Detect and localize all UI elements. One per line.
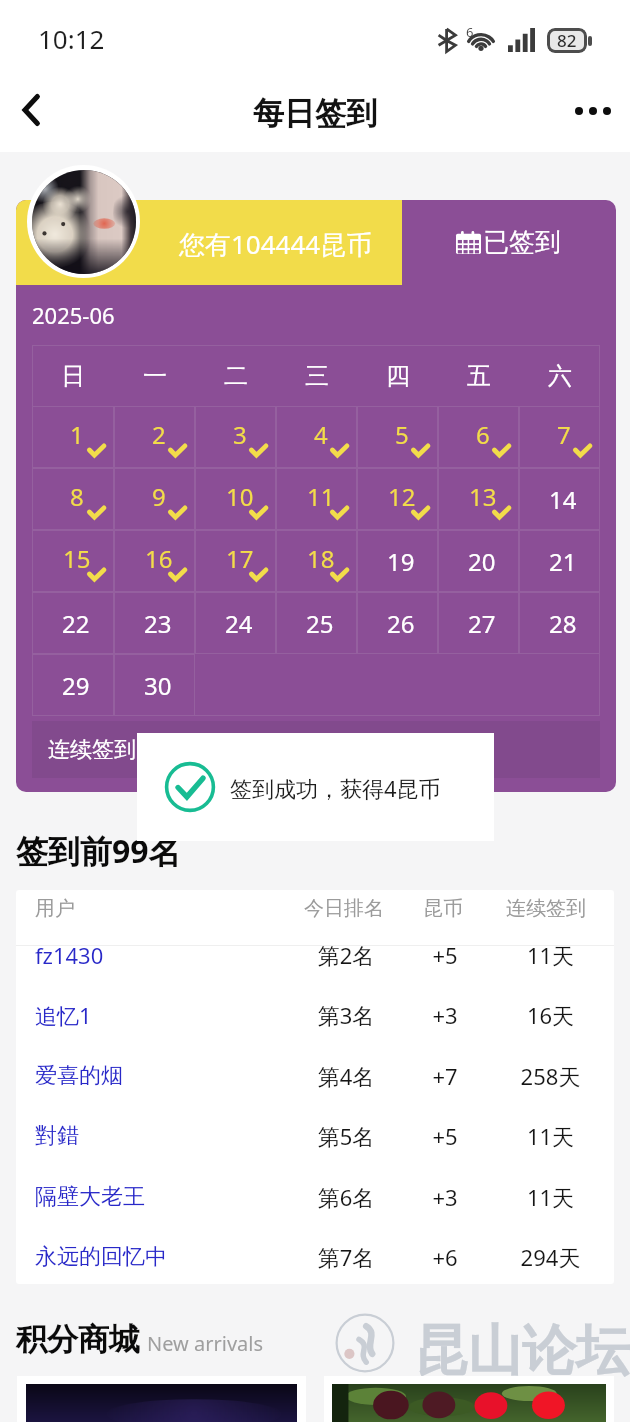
button[interactable]: 8 xyxy=(32,468,114,530)
staticText: 积分商城 xyxy=(16,1320,140,1359)
staticText: 11天 xyxy=(488,1121,613,1151)
button[interactable]: 10 xyxy=(195,468,276,530)
staticText: 2 xyxy=(152,418,166,451)
button[interactable]: 17 xyxy=(195,530,276,592)
button[interactable]: 21 xyxy=(519,530,600,592)
button[interactable]: 15 xyxy=(32,530,114,592)
staticText: 18 xyxy=(307,542,335,575)
button[interactable]: 12 xyxy=(357,468,438,530)
button[interactable]: 14 xyxy=(519,468,600,530)
staticText: 19 xyxy=(387,545,415,578)
staticText: 11天 xyxy=(488,1182,613,1212)
staticText: 27 xyxy=(468,607,496,640)
button[interactable]: 9 xyxy=(114,468,195,530)
button[interactable]: 13 xyxy=(438,468,519,530)
staticText: 日 xyxy=(61,361,85,391)
button[interactable]: 1 xyxy=(32,406,114,468)
staticText: 13 xyxy=(469,480,497,513)
button[interactable]: 2 xyxy=(114,406,195,468)
button[interactable]: 對錯 xyxy=(16,1106,614,1166)
staticText: 今日排名 xyxy=(304,896,384,921)
staticText: 23 xyxy=(144,607,172,640)
staticText: 用户 xyxy=(35,896,75,921)
staticText: 10:12 xyxy=(38,21,105,56)
staticText: 连续签到 xyxy=(506,896,586,921)
button[interactable]: 22 xyxy=(32,592,114,654)
staticText: 16 xyxy=(145,542,173,575)
button[interactable]: 20 xyxy=(438,530,519,592)
staticText: 爱喜的烟 xyxy=(35,1062,123,1090)
staticText: 20 xyxy=(468,545,496,578)
button[interactable]: 19 xyxy=(357,530,438,592)
button[interactable] xyxy=(17,1376,306,1422)
staticText: 已签到 xyxy=(483,226,561,259)
staticText: 6 xyxy=(466,23,474,41)
staticText: 15 xyxy=(63,542,91,575)
staticText: 二 xyxy=(224,361,248,391)
staticText: 第6名 xyxy=(286,1182,406,1212)
staticText: 第3名 xyxy=(286,1000,406,1030)
staticText: 82 xyxy=(557,29,577,52)
button[interactable]: 隔壁大老王 xyxy=(16,1167,614,1227)
button[interactable]: 5 xyxy=(357,406,438,468)
staticText: +5 xyxy=(400,940,490,970)
staticText: 對錯 xyxy=(35,1122,79,1150)
staticText: 258天 xyxy=(488,1061,613,1091)
staticText: fz1430 xyxy=(35,940,104,970)
staticText: 3 xyxy=(233,418,247,451)
button[interactable]: More options xyxy=(565,83,621,139)
button[interactable]: 已签到 xyxy=(456,226,561,259)
button[interactable]: 27 xyxy=(438,592,519,654)
staticText: 21 xyxy=(549,545,577,578)
button[interactable] xyxy=(324,1376,614,1422)
button[interactable]: 4 xyxy=(276,406,357,468)
button[interactable]: 3 xyxy=(195,406,276,468)
staticText: 隔壁大老王 xyxy=(35,1183,145,1211)
staticText: 10 xyxy=(226,480,254,513)
staticText: 8 xyxy=(70,480,84,513)
button[interactable]: 11 xyxy=(276,468,357,530)
button[interactable]: 16 xyxy=(114,530,195,592)
staticText: 第5名 xyxy=(286,1121,406,1151)
staticText: +7 xyxy=(400,1061,490,1091)
staticText: 昆币 xyxy=(423,896,463,921)
staticText: 连续签到 xyxy=(48,736,136,764)
button[interactable]: 23 xyxy=(114,592,195,654)
button[interactable]: 24 xyxy=(195,592,276,654)
staticText: 7 xyxy=(557,418,571,451)
staticText: 六 xyxy=(548,361,572,391)
button[interactable]: fz1430 xyxy=(16,925,614,985)
button[interactable]: 25 xyxy=(276,592,357,654)
staticText: 2025-06 xyxy=(32,300,115,330)
button[interactable]: 6 xyxy=(438,406,519,468)
button[interactable]: 26 xyxy=(357,592,438,654)
button[interactable]: 28 xyxy=(519,592,600,654)
staticText: 16天 xyxy=(488,1000,613,1030)
staticText: 第2名 xyxy=(286,940,406,970)
staticText: 第7名 xyxy=(286,1242,406,1272)
staticText: +6 xyxy=(400,1242,490,1272)
staticText: New arrivals xyxy=(147,1330,264,1357)
button[interactable]: 18 xyxy=(276,530,357,592)
button[interactable]: 30 xyxy=(114,654,195,716)
staticText: 昆山论坛 xyxy=(414,1317,630,1385)
button[interactable]: 爱喜的烟 xyxy=(16,1046,614,1106)
staticText: 签到前99名 xyxy=(16,829,181,873)
button[interactable]: 永远的回忆中 xyxy=(16,1227,614,1284)
button[interactable]: 29 xyxy=(32,654,114,716)
staticText: +3 xyxy=(400,1000,490,1030)
staticText: 24 xyxy=(225,607,253,640)
staticText: 30 xyxy=(144,669,172,702)
staticText: 第4名 xyxy=(286,1061,406,1091)
staticText: 6 xyxy=(476,418,490,451)
staticText: 签到成功，获得4昆币 xyxy=(230,773,441,803)
button[interactable]: 7 xyxy=(519,406,600,468)
staticText: 四 xyxy=(386,361,410,391)
staticText: 永远的回忆中 xyxy=(35,1243,167,1271)
button[interactable]: 追忆1 xyxy=(16,985,614,1045)
staticText: 您有104444昆币 xyxy=(179,226,373,262)
staticText: 4 xyxy=(314,418,328,451)
button[interactable]: Back xyxy=(4,83,58,137)
staticText: 12 xyxy=(388,480,416,513)
staticText: +5 xyxy=(400,1121,490,1151)
